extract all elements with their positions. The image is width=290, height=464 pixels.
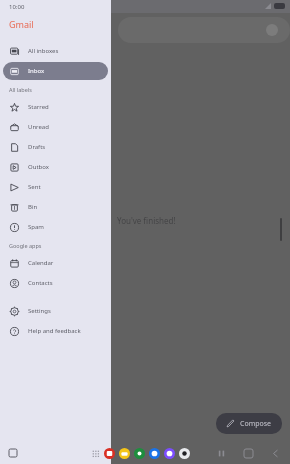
staticText: Compose bbox=[240, 419, 272, 429]
staticText: Help and feedback bbox=[28, 327, 81, 335]
button[interactable]: Settings bbox=[3, 302, 108, 320]
button[interactable]: Recents bbox=[217, 449, 226, 458]
button[interactable]: Phone bbox=[134, 448, 145, 459]
staticText: Unread bbox=[28, 123, 49, 131]
button[interactable]: Inbox bbox=[3, 62, 108, 80]
staticText: 10:00 bbox=[9, 3, 25, 11]
button[interactable]: Outbox bbox=[3, 158, 108, 176]
button[interactable]: Starred bbox=[3, 98, 108, 116]
button[interactable]: Unread bbox=[3, 118, 108, 136]
button[interactable]: Compose bbox=[216, 413, 282, 434]
button[interactable]: Messages bbox=[149, 448, 160, 459]
button[interactable]: Bin bbox=[3, 198, 108, 216]
button[interactable]: Files bbox=[119, 448, 130, 459]
button[interactable]: All inboxes bbox=[3, 42, 108, 60]
staticText: Bin bbox=[28, 203, 38, 211]
staticText: Spam bbox=[28, 223, 44, 231]
staticText: All inboxes bbox=[28, 47, 59, 55]
staticText: Drafts bbox=[28, 143, 46, 151]
staticText: Starred bbox=[28, 103, 49, 111]
button[interactable]: All apps bbox=[92, 450, 100, 458]
staticText: You've finished! bbox=[117, 215, 176, 226]
button[interactable]: Spam bbox=[3, 218, 108, 236]
staticText: Sent bbox=[28, 183, 41, 191]
button[interactable]: Drafts bbox=[3, 138, 108, 156]
staticText: Google apps bbox=[9, 242, 42, 249]
button[interactable]: Sent bbox=[3, 178, 108, 196]
staticText: Outbox bbox=[28, 163, 49, 171]
button[interactable]: Screenshot bbox=[9, 449, 17, 457]
button[interactable]: Home bbox=[244, 449, 253, 458]
button[interactable]: Compass bbox=[164, 448, 175, 459]
button[interactable]: Gmail bbox=[104, 448, 115, 459]
staticText: Calendar bbox=[28, 259, 54, 267]
button[interactable]: Calendar bbox=[3, 254, 108, 272]
staticText: All labels bbox=[9, 86, 32, 93]
staticText: Contacts bbox=[28, 279, 53, 287]
staticText: Inbox bbox=[28, 67, 45, 75]
staticText: Gmail bbox=[9, 18, 34, 30]
staticText: Settings bbox=[28, 307, 51, 315]
button[interactable]: Camera bbox=[179, 448, 190, 459]
button[interactable]: Contacts bbox=[3, 274, 108, 292]
button[interactable]: Help and feedback bbox=[3, 322, 108, 340]
button[interactable]: Back bbox=[271, 449, 280, 458]
